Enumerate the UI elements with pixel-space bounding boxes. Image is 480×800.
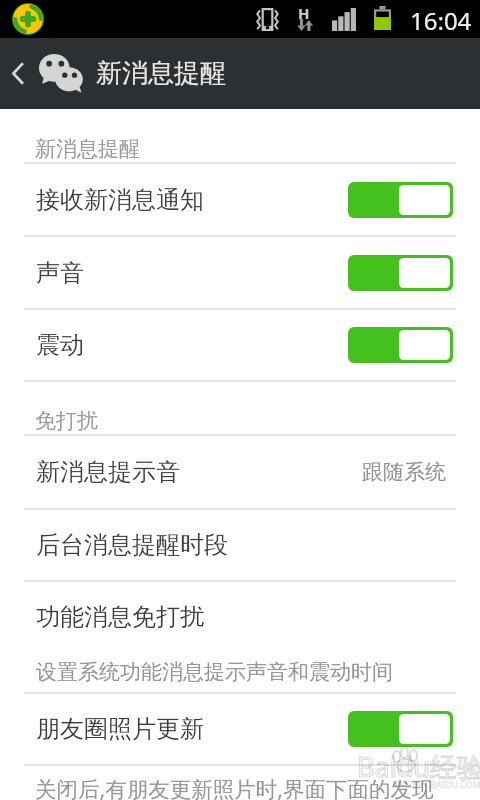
button[interactable]: 功能消息免打扰 [0,582,480,692]
button[interactable]: 声音 [0,237,480,308]
button[interactable]: 朋友圈照片更新 [0,694,480,764]
button[interactable]: 接收新消息通知 [0,164,480,235]
staticText: 震动 [36,330,84,360]
button[interactable]: 后台消息提醒时段 [0,510,480,580]
button[interactable]: Toggle [348,255,453,291]
button[interactable]: Toggle [348,327,453,363]
staticText: 功能消息免打扰 [36,602,204,632]
button[interactable]: Toggle [348,711,453,747]
staticText: 关闭后,有朋友更新照片时,界面下面的发现 [35,774,434,800]
staticText: 朋友圈照片更新 [36,714,204,744]
staticText: 后台消息提醒时段 [36,530,228,560]
staticText: 新消息提示音 [36,457,180,487]
staticText: JINGYAN.BAIDU.COM [392,778,480,790]
button[interactable]: 震动 [0,310,480,380]
staticText: 新消息提醒 [35,136,140,162]
staticText: 设置系统功能消息提示声音和震动时间 [36,659,393,685]
staticText: 新消息提醒 [96,57,226,90]
staticText: 跟随系统 [362,459,446,485]
staticText: 16:04 [410,4,472,37]
staticText: 接收新消息通知 [36,185,204,215]
staticText: 声音 [36,258,84,288]
staticText: H [298,3,310,23]
button[interactable]: Toggle [348,182,453,218]
button[interactable]: Back [0,38,87,109]
staticText: Baidu经验 [357,748,480,785]
button[interactable]: 新消息提示音 [0,436,480,508]
staticText: 免打扰 [35,408,98,434]
